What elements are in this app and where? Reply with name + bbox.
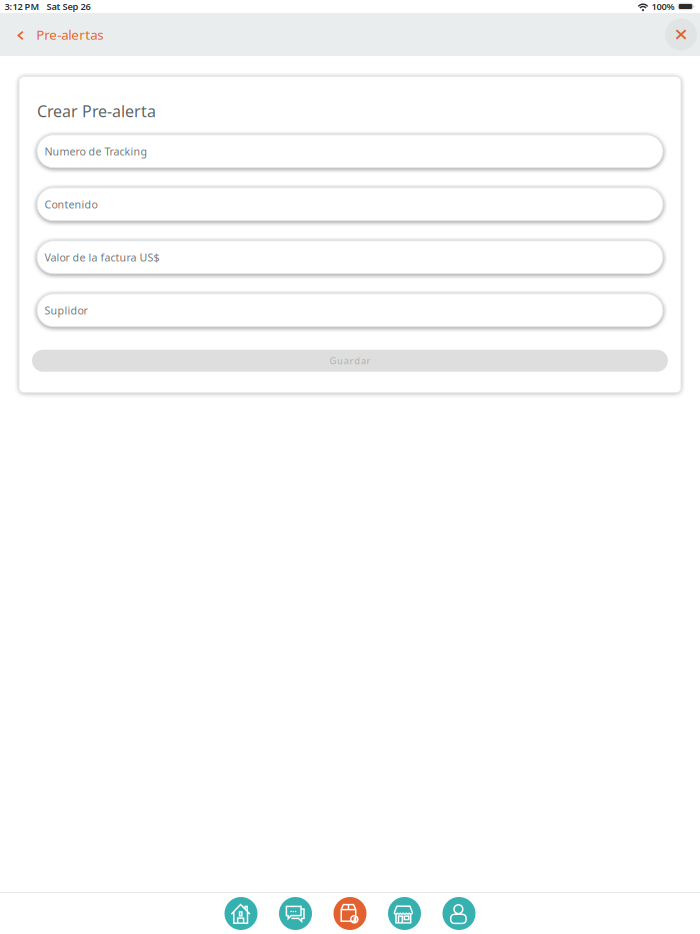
staticText: G [329,355,336,367]
button[interactable]: Cerrar [657,13,700,56]
staticText: a [344,355,349,367]
button[interactable]: G [32,350,668,372]
button[interactable]: Inicio [214,893,268,934]
staticText: Numero de Tracking [44,144,147,158]
staticText: Crear Pre-alerta [37,100,156,122]
button[interactable]: Tienda [377,893,432,934]
staticText: r [367,355,371,367]
staticText: Valor de la factura US$ [44,250,159,264]
staticText: u [337,355,343,367]
button[interactable]: Pre-alertas [0,13,113,56]
button[interactable]: Contenido [37,188,663,221]
staticText: Suplidor [44,303,87,317]
staticText: 3:12 PM [4,0,39,13]
staticText: r [349,355,353,367]
staticText: Contenido [44,197,97,211]
button[interactable]: Suplidor [37,294,663,327]
button[interactable]: Numero de Tracking [37,135,663,168]
button[interactable]: Mensajes [268,893,323,934]
button[interactable]: Pre-alertas [323,893,377,934]
button[interactable]: Perfil [432,893,486,934]
staticText: 100% [651,0,674,13]
staticText: d [354,355,360,367]
staticText: a [361,355,366,367]
staticText: Pre-alertas [36,26,103,43]
button[interactable]: Valor de la factura US$ [37,241,663,274]
staticText: Sat Sep 26 [46,0,90,13]
